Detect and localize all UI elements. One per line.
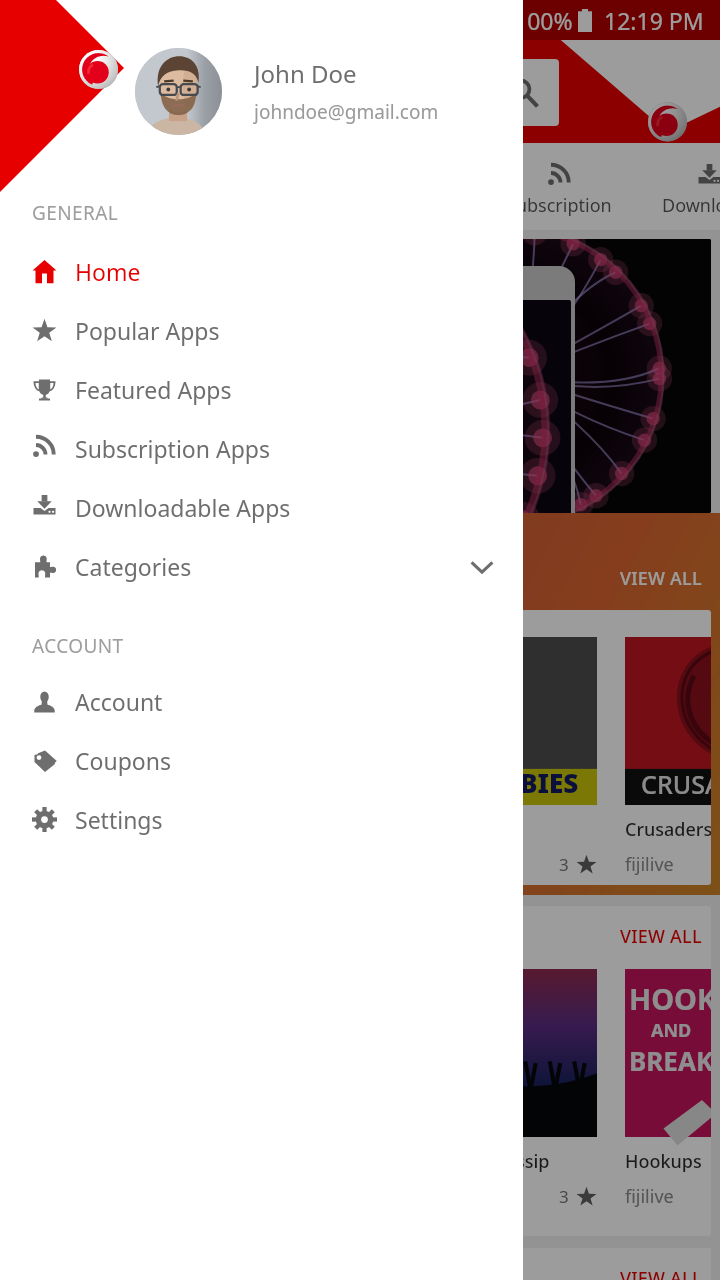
staticText: John Doe: [254, 57, 357, 90]
button[interactable]: Subscription: [484, 143, 634, 230]
button[interactable]: EWS: [422, 969, 597, 1209]
staticText: AND: [651, 1018, 692, 1043]
staticText: 12:19 PM: [604, 5, 704, 36]
button[interactable]: VIEW ALL: [620, 566, 702, 591]
staticText: Hookups: [625, 1149, 702, 1174]
button[interactable]: Downloadable Apps: [0, 478, 523, 537]
staticText: HOOK: [629, 979, 711, 1018]
staticText: Subscription: [506, 193, 612, 218]
button[interactable]: CRUSADERS: [625, 637, 711, 877]
button[interactable]: [9, 239, 711, 513]
staticText: VIEW ALL: [620, 1266, 702, 1280]
staticText: Account: [75, 686, 163, 717]
staticText: 100%: [514, 5, 573, 36]
staticText: johndoe@gmail.com: [254, 99, 439, 125]
button[interactable]: VIEW ALL: [620, 1266, 702, 1280]
staticText: Featured Apps: [75, 374, 232, 405]
button[interactable]: VIEW ALL: [620, 924, 702, 949]
staticText: Popular Apps: [75, 315, 220, 346]
button[interactable]: Coupons: [0, 731, 523, 790]
button[interactable]: Subscription Apps: [0, 419, 523, 478]
staticText: Settings: [75, 804, 163, 835]
staticText: Downloadable Apps: [75, 492, 291, 523]
button[interactable]: Account: [0, 672, 523, 731]
staticText: Downloads: [662, 193, 720, 218]
button[interactable]: Downloads: [634, 143, 720, 230]
staticText: News & Gossip: [422, 1149, 550, 1174]
staticText: Crusaders: [625, 817, 711, 842]
staticText: Coupons: [75, 745, 171, 776]
button[interactable]: [263, 59, 559, 126]
button[interactable]: Categories: [0, 537, 523, 596]
button[interactable]: BRUMBIES: [422, 637, 597, 877]
staticText: CRUSADERS: [641, 767, 711, 801]
staticText: 3: [559, 853, 569, 876]
staticText: Categories: [75, 551, 192, 582]
staticText: VIEW ALL: [620, 924, 702, 949]
staticText: fijilive: [625, 852, 674, 877]
button[interactable]: Featured Apps: [0, 360, 523, 419]
button[interactable]: HOOK: [625, 969, 711, 1209]
button[interactable]: Home: [0, 242, 523, 301]
button[interactable]: Popular Apps: [0, 301, 523, 360]
staticText: GENERAL: [32, 200, 119, 226]
button[interactable]: Settings: [0, 790, 523, 849]
staticText: ACCOUNT: [32, 633, 124, 659]
staticText: Subscription Apps: [75, 433, 270, 464]
staticText: VIEW ALL: [620, 566, 702, 591]
staticText: 3: [559, 1185, 569, 1208]
staticText: BREAK: [629, 1043, 711, 1078]
staticText: fijilive: [625, 1184, 674, 1209]
staticText: Home: [75, 256, 141, 287]
staticText: BRUMBIES: [440, 765, 579, 800]
